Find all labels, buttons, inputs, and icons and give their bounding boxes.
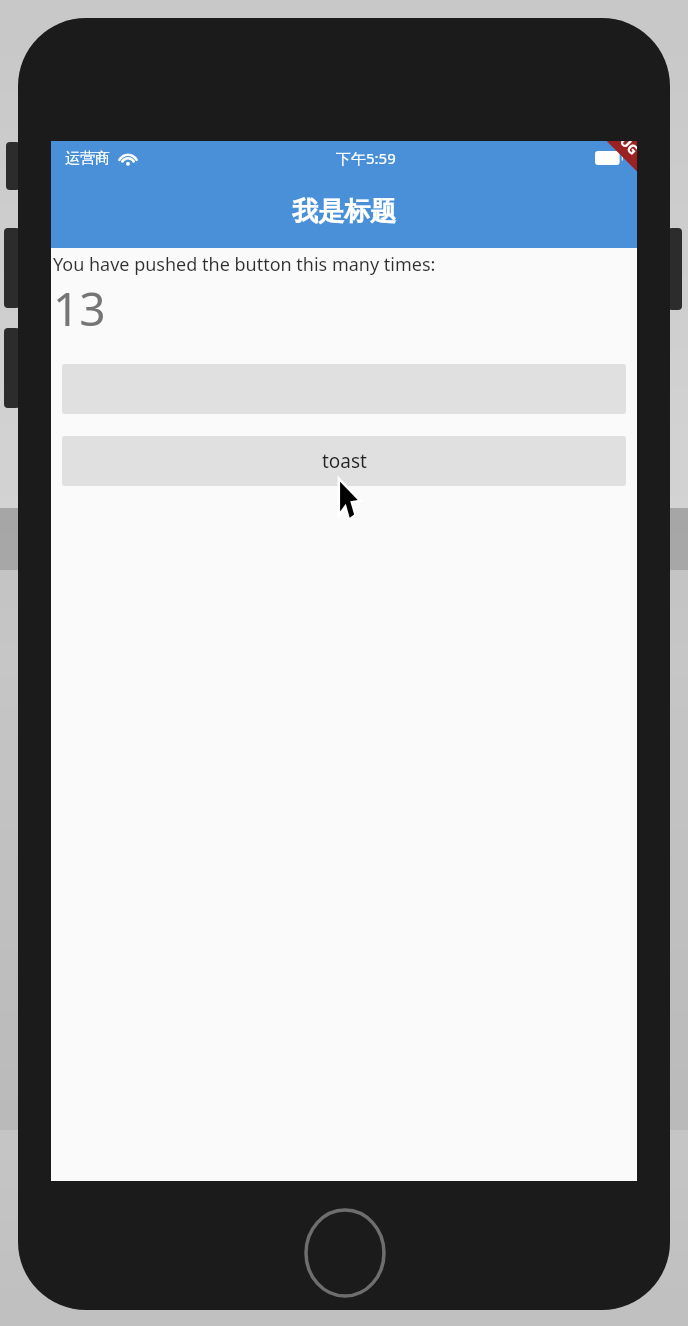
staticText: DEBUG [598, 141, 637, 159]
staticText: 下午5:59 [336, 148, 396, 168]
staticText: toast [322, 448, 367, 474]
staticText: 我是标题 [292, 195, 396, 228]
staticText: You have pushed the button this many tim… [53, 252, 436, 277]
button[interactable]: toast [62, 436, 626, 486]
staticText: 运营商 [65, 149, 110, 168]
staticText: 13 [53, 277, 106, 340]
